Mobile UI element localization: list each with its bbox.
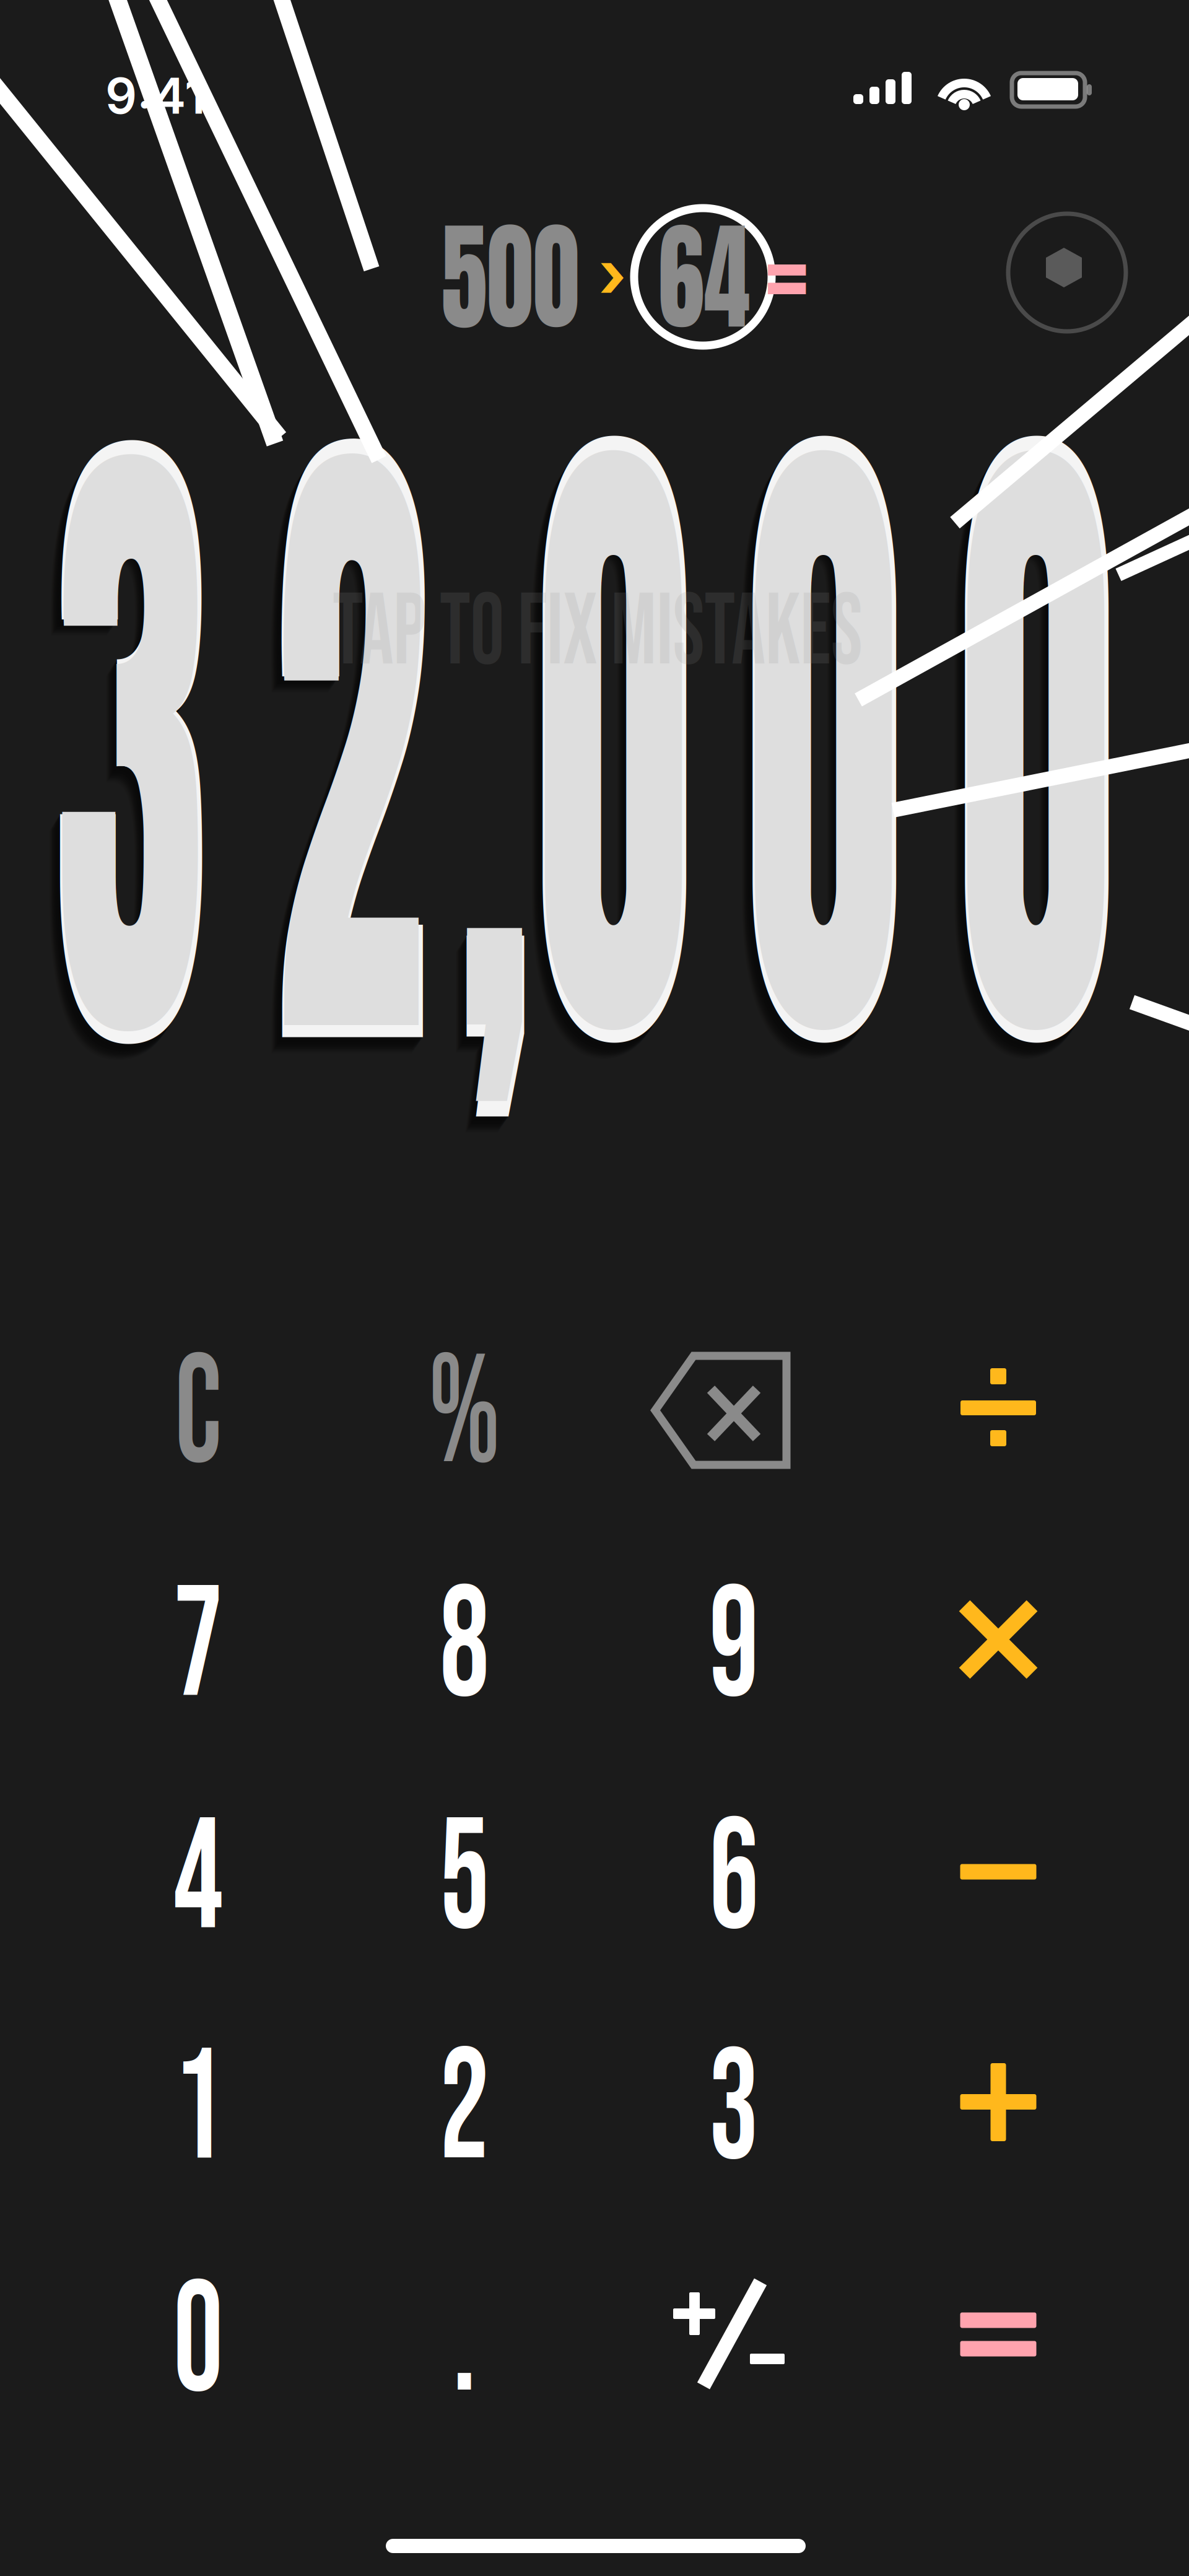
- staticText: 0: [436, 226, 778, 1270]
- staticText: 3: [0, 236, 282, 1280]
- staticText: 0: [443, 221, 786, 1265]
- button[interactable]: 0: [68, 2240, 328, 2445]
- staticText: 0: [422, 236, 764, 1280]
- staticText: 0: [429, 231, 771, 1275]
- staticText: 0: [637, 232, 979, 1277]
- staticText: 0: [646, 226, 988, 1270]
- button[interactable]: %: [334, 1313, 594, 1517]
- staticText: 0: [653, 221, 995, 1265]
- staticText: 0: [644, 227, 986, 1272]
- button[interactable]: 9: [604, 1545, 864, 1750]
- staticText: TAP TO FIX MISTAKES: [282, 573, 913, 693]
- staticText: 1: [167, 2016, 229, 2204]
- button[interactable]: Equals: [868, 2232, 1128, 2437]
- staticText: ,: [404, 227, 568, 1272]
- staticText: 0: [844, 236, 1186, 1280]
- button[interactable]: 3: [604, 2008, 864, 2212]
- staticText: ,: [392, 236, 556, 1280]
- button[interactable]: 2: [334, 2008, 594, 2212]
- staticText: 2: [169, 229, 511, 1273]
- staticText: ,: [410, 224, 574, 1268]
- staticText: 3: [0, 232, 287, 1277]
- staticText: 0: [439, 224, 782, 1268]
- staticText: 2: [179, 221, 522, 1265]
- button[interactable]: Settings: [993, 198, 1141, 347]
- staticText: ,: [390, 237, 554, 1281]
- staticText: 0: [443, 221, 786, 1265]
- staticText: 3: [0, 227, 294, 1272]
- staticText: 64: [646, 189, 762, 365]
- button[interactable]: Delete: [604, 1313, 864, 1517]
- button[interactable]: Minus: [868, 1770, 1128, 1974]
- staticText: 3: [0, 226, 296, 1270]
- button[interactable]: 500: [0, 0, 1189, 186]
- staticText: 0: [633, 235, 976, 1279]
- button[interactable]: 5: [334, 1778, 594, 1982]
- staticText: 0: [858, 226, 1189, 1270]
- staticText: ,: [401, 230, 565, 1274]
- staticText: 3: [0, 235, 283, 1279]
- staticText: 3: [0, 230, 291, 1274]
- staticText: 0: [864, 222, 1189, 1267]
- staticText: 6: [703, 1786, 765, 1974]
- staticText: ,: [413, 221, 577, 1265]
- button[interactable]: .: [334, 2240, 594, 2445]
- staticText: 0: [631, 236, 974, 1280]
- staticText: 2: [163, 232, 506, 1277]
- staticText: 0: [423, 235, 766, 1279]
- staticText: 2: [174, 225, 516, 1269]
- staticText: 0: [847, 234, 1189, 1278]
- button[interactable]: Plus or minus: [599, 2232, 860, 2436]
- staticText: ,: [406, 226, 570, 1270]
- staticText: =: [771, 201, 803, 353]
- button[interactable]: 7: [68, 1545, 328, 1750]
- staticText: 0: [630, 237, 972, 1281]
- staticText: 0: [862, 224, 1189, 1268]
- staticText: 9:41: [105, 66, 206, 126]
- staticText: 2: [185, 246, 512, 1243]
- staticText: 2: [167, 230, 509, 1274]
- staticText: ,: [415, 246, 572, 1243]
- staticText: 2: [158, 236, 500, 1280]
- staticText: 2: [156, 237, 498, 1281]
- staticText: 0: [434, 227, 777, 1272]
- staticText: C: [169, 1323, 228, 1507]
- staticText: 9: [703, 1553, 765, 1742]
- button[interactable]: Divide: [868, 1305, 1128, 1509]
- staticText: .: [450, 2248, 479, 2437]
- staticText: 4: [167, 1786, 229, 1974]
- button[interactable]: C: [68, 1313, 328, 1517]
- staticText: 0: [432, 229, 775, 1273]
- staticText: 7: [167, 1553, 229, 1742]
- staticText: 2: [161, 234, 504, 1278]
- staticText: 0: [420, 237, 762, 1281]
- staticText: 0: [865, 221, 1189, 1265]
- staticText: ,: [397, 232, 561, 1277]
- staticText: 0: [640, 230, 983, 1274]
- button[interactable]: Plus: [868, 2000, 1128, 2204]
- staticText: 0: [856, 227, 1189, 1272]
- staticText: 3: [0, 229, 292, 1273]
- staticText: ,: [413, 221, 577, 1265]
- staticText: 0: [167, 2248, 229, 2437]
- staticText: 0: [651, 222, 994, 1267]
- button[interactable]: 1: [68, 2008, 328, 2212]
- staticText: 2: [176, 224, 518, 1268]
- button[interactable]: 4: [68, 1778, 328, 1982]
- staticText: 0: [427, 232, 769, 1277]
- staticText: ,: [403, 229, 567, 1273]
- staticText: ,: [399, 231, 563, 1275]
- button[interactable]: 8: [334, 1545, 594, 1750]
- staticText: 0: [871, 246, 1189, 1243]
- button[interactable]: Multiply: [868, 1537, 1128, 1742]
- staticText: 2: [177, 222, 520, 1267]
- staticText: 0: [639, 231, 981, 1275]
- staticText: 2: [433, 2016, 496, 2204]
- button[interactable]: 6: [604, 1778, 864, 1982]
- staticText: 0: [849, 232, 1189, 1277]
- staticText: 3: [0, 231, 289, 1275]
- staticText: 0: [649, 224, 992, 1268]
- staticText: ›: [599, 235, 626, 313]
- staticText: 0: [653, 221, 995, 1265]
- staticText: %: [419, 1323, 510, 1507]
